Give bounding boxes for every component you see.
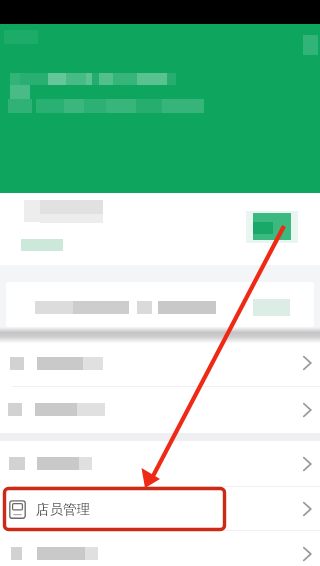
other: Open bbox=[299, 456, 315, 472]
other: Open bbox=[299, 355, 315, 371]
button[interactable]: Menu item bbox=[0, 387, 320, 433]
button[interactable]: 店员管理 bbox=[0, 487, 320, 531]
other: Open bbox=[299, 546, 315, 562]
other: Open bbox=[299, 501, 315, 517]
button[interactable]: Menu item bbox=[0, 441, 320, 487]
button[interactable]: Menu item bbox=[0, 531, 320, 566]
staticText: 店员管理 bbox=[36, 501, 90, 518]
other: Open bbox=[299, 402, 315, 418]
button[interactable]: Menu item bbox=[0, 340, 320, 387]
